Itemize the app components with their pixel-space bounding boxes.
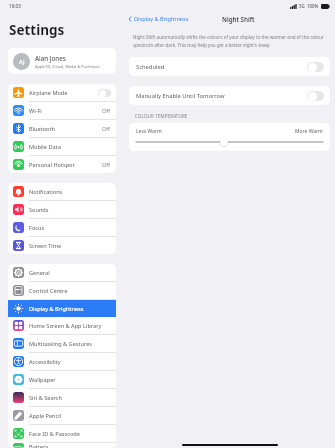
staticText: spectrum after dark. This may help you g… xyxy=(133,42,271,48)
staticText: Focus xyxy=(29,224,110,232)
staticText: General xyxy=(29,269,110,277)
button[interactable]: Screen Time xyxy=(8,237,116,254)
staticText: Off xyxy=(102,161,110,168)
staticText: 5G xyxy=(299,3,305,9)
button[interactable]: Wallpaper xyxy=(8,371,116,388)
staticText: Airplane Mode xyxy=(29,89,98,97)
button[interactable]: Less Warm xyxy=(129,123,330,151)
staticText: Scheduled xyxy=(136,63,307,71)
staticText: Mobile Data xyxy=(29,143,110,151)
button[interactable]: Control Centre xyxy=(8,282,116,299)
staticText: Wi-Fi xyxy=(29,107,102,115)
staticText: Alan Jones xyxy=(35,54,66,62)
button[interactable]: Home Screen & App Library xyxy=(8,317,116,334)
button[interactable]: Display & Brightness xyxy=(8,300,116,317)
staticText: 100% xyxy=(307,3,319,9)
staticText: Notifications xyxy=(29,188,110,196)
staticText: Off xyxy=(102,125,110,132)
button[interactable]: Toggle xyxy=(307,91,324,101)
button[interactable]: Bluetooth xyxy=(8,120,116,137)
staticText: Night Shift automatically shifts the col… xyxy=(133,34,324,40)
staticText: Personal Hotspot xyxy=(29,161,102,169)
button[interactable]: Apple Pencil xyxy=(8,407,116,424)
staticText: Manually Enable Until Tomorrow xyxy=(136,92,307,100)
staticText: Sounds xyxy=(29,206,110,214)
button[interactable]: Battery xyxy=(8,443,116,448)
button[interactable]: Scheduled xyxy=(129,57,330,76)
button[interactable]: Display & Brightness xyxy=(124,13,193,25)
button[interactable]: Manually Enable Until Tomorrow xyxy=(129,86,330,105)
staticText: COLOUR TEMPERATURE xyxy=(135,113,188,119)
button[interactable]: Wi-Fi xyxy=(8,102,116,119)
staticText: Display & Brightness xyxy=(134,15,189,23)
staticText: Accessibility xyxy=(29,358,110,366)
button[interactable]: Airplane Mode xyxy=(8,84,116,101)
staticText: Settings xyxy=(9,21,65,39)
staticText: Siri & Search xyxy=(29,394,110,402)
button[interactable]: Notifications xyxy=(8,183,116,200)
staticText: Control Centre xyxy=(29,287,110,295)
staticText: Wallpaper xyxy=(29,376,110,384)
staticText: Bluetooth xyxy=(29,125,102,133)
staticText: Night Shift xyxy=(222,15,255,23)
staticText: Less Warm xyxy=(136,128,162,135)
button[interactable]: Face ID & Passcode xyxy=(8,425,116,442)
staticText: Screen Time xyxy=(29,242,110,250)
button[interactable]: Multitasking & Gestures xyxy=(8,335,116,352)
button[interactable]: Accessibility xyxy=(8,353,116,370)
staticText: Multitasking & Gestures xyxy=(29,340,110,348)
button[interactable]: General xyxy=(8,264,116,281)
button[interactable]: Personal Hotspot xyxy=(8,156,116,173)
staticText: Battery xyxy=(29,443,110,448)
button[interactable]: AJ xyxy=(8,48,116,74)
staticText: Off xyxy=(102,107,110,114)
staticText: Display & Brightness xyxy=(29,305,110,313)
button[interactable]: Mobile Data xyxy=(8,138,116,155)
button[interactable]: Siri & Search xyxy=(8,389,116,406)
staticText: 10:03 xyxy=(9,3,21,9)
staticText: Face ID & Passcode xyxy=(29,430,110,438)
button[interactable]: Focus xyxy=(8,219,116,236)
button[interactable]: Toggle xyxy=(307,62,324,72)
staticText: Apple ID, iCloud, Media & Purchases xyxy=(35,64,100,69)
staticText: Home Screen & App Library xyxy=(29,322,110,330)
staticText: More Warm xyxy=(295,128,323,135)
staticText: AJ xyxy=(19,58,25,65)
staticText: Apple Pencil xyxy=(29,412,110,420)
button[interactable]: Sounds xyxy=(8,201,116,218)
